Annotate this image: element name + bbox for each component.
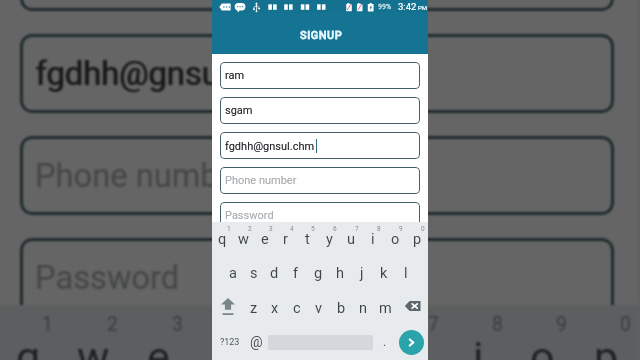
- button[interactable]: m: [374, 290, 396, 324]
- button[interactable]: Shift: [212, 290, 243, 324]
- staticText: 1: [42, 313, 53, 336]
- staticText: d: [270, 265, 279, 282]
- button[interactable]: Backspace: [396, 290, 428, 324]
- staticText: 0: [620, 313, 631, 336]
- button[interactable]: 7: [340, 222, 362, 256]
- button[interactable]: 9: [510, 305, 574, 360]
- staticText: 3: [269, 225, 273, 233]
- staticText: 0: [421, 225, 425, 233]
- button[interactable]: Enter: [396, 324, 426, 360]
- button[interactable]: 1: [212, 222, 233, 256]
- button[interactable]: l: [395, 256, 417, 290]
- staticText: p: [413, 231, 422, 248]
- staticText: 7: [428, 313, 439, 336]
- staticText: r: [215, 332, 230, 360]
- button[interactable]: 0: [574, 305, 638, 360]
- button[interactable]: Password: [20, 238, 614, 317]
- button[interactable]: sgam: [20, 0, 614, 11]
- button[interactable]: fgdhh@gnsul.chm: [220, 132, 420, 159]
- button[interactable]: 4: [190, 305, 254, 360]
- button[interactable]: Password: [220, 202, 420, 229]
- button[interactable]: 2: [61, 305, 126, 360]
- staticText: 7: [355, 225, 359, 233]
- button[interactable]: v: [308, 290, 330, 324]
- staticText: Phone number: [35, 157, 248, 195]
- button[interactable]: 1: [0, 305, 61, 360]
- button[interactable]: n: [352, 290, 374, 324]
- button[interactable]: z: [243, 290, 264, 324]
- staticText: o: [530, 332, 555, 360]
- button[interactable]: h: [329, 256, 351, 290]
- staticText: 8: [492, 313, 503, 336]
- button[interactable]: a: [222, 256, 243, 290]
- staticText: n: [359, 300, 368, 317]
- button[interactable]: x: [264, 290, 286, 324]
- staticText: 1: [227, 225, 231, 233]
- button[interactable]: .: [374, 324, 396, 360]
- button[interactable]: j: [351, 256, 373, 290]
- button[interactable]: 3: [126, 305, 190, 360]
- button[interactable]: c: [286, 290, 308, 324]
- staticText: 6: [333, 225, 337, 233]
- staticText: y: [326, 231, 333, 248]
- staticText: z: [250, 300, 258, 317]
- staticText: k: [380, 265, 388, 282]
- staticText: 3:42: [398, 1, 417, 12]
- staticText: w: [77, 332, 110, 360]
- staticText: s: [250, 265, 258, 282]
- staticText: t: [279, 332, 294, 360]
- staticText: 9: [556, 313, 567, 336]
- button[interactable]: 6: [318, 305, 382, 360]
- staticText: y: [340, 332, 361, 360]
- button[interactable]: 7: [382, 305, 446, 360]
- staticText: b: [337, 300, 346, 317]
- button[interactable]: 0: [406, 222, 428, 256]
- staticText: t: [305, 231, 310, 248]
- staticText: e: [261, 231, 269, 248]
- button[interactable]: 2: [233, 222, 254, 256]
- staticText: q: [218, 231, 227, 248]
- button[interactable]: 5: [254, 305, 318, 360]
- button[interactable]: fgdhh@gnsul.chm: [20, 34, 614, 113]
- staticText: f: [293, 265, 299, 282]
- button[interactable]: 3: [254, 222, 275, 256]
- staticText: i: [371, 231, 375, 248]
- staticText: .: [383, 335, 387, 349]
- staticText: fgdhh@gnsul.chm: [225, 140, 315, 153]
- staticText: sgam: [225, 104, 253, 117]
- staticText: Phone number: [225, 174, 297, 187]
- button[interactable]: 4: [275, 222, 296, 256]
- button[interactable]: Phone number: [220, 167, 420, 194]
- button[interactable]: 5: [296, 222, 318, 256]
- button[interactable]: f: [285, 256, 307, 290]
- button[interactable]: Space: [267, 324, 374, 360]
- staticText: c: [293, 300, 301, 317]
- staticText: 2: [248, 225, 252, 233]
- staticText: 5: [300, 313, 311, 336]
- staticText: m: [379, 300, 392, 317]
- button[interactable]: 9: [384, 222, 406, 256]
- staticText: e: [147, 332, 170, 360]
- button[interactable]: ram: [220, 62, 420, 89]
- staticText: i: [473, 332, 484, 360]
- button[interactable]: b: [330, 290, 352, 324]
- staticText: r: [283, 231, 288, 248]
- staticText: v: [315, 300, 323, 317]
- staticText: u: [402, 332, 426, 360]
- button[interactable]: 8: [446, 305, 510, 360]
- button[interactable]: s: [243, 256, 264, 290]
- staticText: 6: [364, 313, 375, 336]
- button[interactable]: Phone number: [20, 136, 614, 215]
- button[interactable]: 6: [318, 222, 340, 256]
- staticText: Password: [225, 209, 274, 222]
- staticText: 99%: [378, 3, 392, 11]
- button[interactable]: g: [307, 256, 329, 290]
- button[interactable]: d: [264, 256, 285, 290]
- staticText: fgdhh@gnsul.chm: [225, 140, 315, 153]
- button[interactable]: ?123: [215, 324, 245, 360]
- button[interactable]: 8: [362, 222, 384, 256]
- button[interactable]: @: [245, 324, 267, 360]
- button[interactable]: sgam: [220, 97, 420, 124]
- button[interactable]: k: [373, 256, 395, 290]
